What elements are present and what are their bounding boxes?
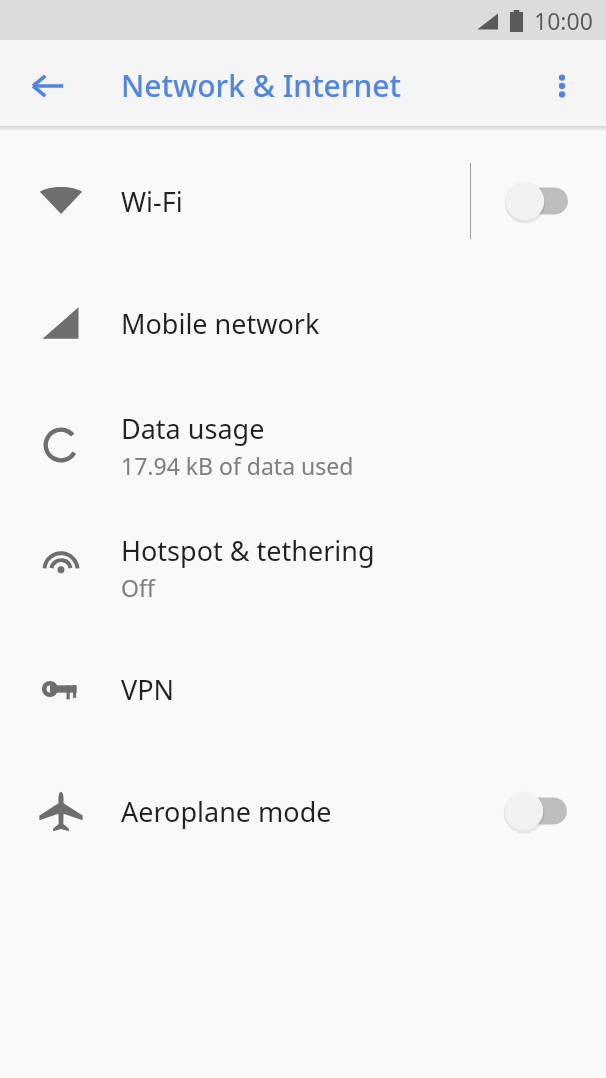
staticText: Off <box>121 572 155 603</box>
staticText: 17.94 kB of data used <box>121 450 354 481</box>
button[interactable]: Back <box>18 56 78 116</box>
staticText: Mobile network <box>121 305 320 342</box>
staticText: VPN <box>121 671 175 708</box>
staticText: Hotspot & tethering <box>121 532 375 569</box>
staticText: Wi-Fi <box>121 183 183 220</box>
button[interactable]: Wi-Fi switch <box>471 140 606 262</box>
button[interactable]: Wi-Fi <box>0 140 606 262</box>
staticText: Data usage <box>121 410 265 447</box>
button[interactable]: More options <box>534 58 590 114</box>
button[interactable]: Mobile network <box>0 262 606 384</box>
button[interactable]: VPN <box>0 628 606 750</box>
staticText: 10:00 <box>534 5 593 36</box>
button[interactable]: Aeroplane mode <box>0 750 606 872</box>
button[interactable]: Hotspot & tethering <box>0 506 606 628</box>
button[interactable]: Aeroplane mode switch <box>470 750 606 872</box>
button[interactable]: Data usage <box>0 384 606 506</box>
staticText: Aeroplane mode <box>121 793 332 830</box>
staticText: Network & Internet <box>121 65 402 106</box>
